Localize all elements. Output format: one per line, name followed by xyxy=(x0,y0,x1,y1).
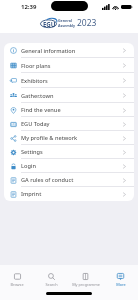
button[interactable]: Search xyxy=(34,265,68,289)
button[interactable]: GA rules of conduct xyxy=(4,173,134,187)
staticText: Search xyxy=(45,282,58,287)
button[interactable]: Exhibitors xyxy=(4,73,134,88)
button[interactable]: My programme xyxy=(68,265,103,289)
staticText: General xyxy=(58,18,72,23)
button[interactable]: General information xyxy=(4,43,134,58)
button[interactable]: Login xyxy=(4,159,134,173)
staticText: More xyxy=(116,282,126,287)
staticText: EGU xyxy=(43,20,56,28)
staticText: Login xyxy=(21,162,36,170)
button[interactable]: EGU Today xyxy=(4,117,134,131)
staticText: Floor plans xyxy=(21,62,51,70)
staticText: GA rules of conduct xyxy=(21,176,74,184)
staticText: Imprint xyxy=(21,190,42,198)
button[interactable]: Floor plans xyxy=(4,58,134,73)
button[interactable]: Browse xyxy=(0,265,34,289)
staticText: My programme xyxy=(72,282,100,287)
button[interactable]: My profile & network xyxy=(4,131,134,145)
button[interactable]: More xyxy=(103,265,138,289)
staticText: Exhibitors xyxy=(21,77,48,85)
button[interactable]: Find the venue xyxy=(4,103,134,117)
button[interactable]: Settings xyxy=(4,145,134,159)
button[interactable]: Imprint xyxy=(4,187,134,201)
staticText: My profile & network xyxy=(21,134,78,142)
staticText: Assembly xyxy=(58,23,76,28)
staticText: 12:39 xyxy=(21,3,37,11)
staticText: Browse xyxy=(10,282,24,287)
staticText: 2023 xyxy=(77,17,97,29)
staticText: EGU Today xyxy=(21,120,50,128)
staticText: Find the venue xyxy=(21,106,61,114)
staticText: General information xyxy=(21,47,76,55)
button[interactable]: Gather.town xyxy=(4,88,134,103)
staticText: Gather.town xyxy=(21,92,54,100)
staticText: Settings xyxy=(21,148,43,156)
